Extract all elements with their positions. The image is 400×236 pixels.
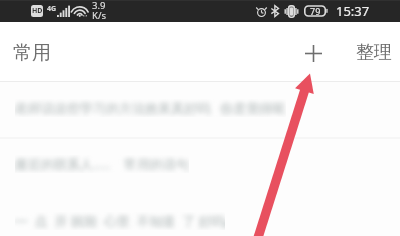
staticText: 整理 (356, 41, 392, 64)
staticText: 老师说这些学习的方法效果真好吗 你是觉得呢 (15, 99, 286, 117)
staticText: 15:37 (336, 2, 370, 20)
staticText: 一 点 开 就能 心里 不知道 了 好吗 (15, 212, 225, 230)
staticText: K/s (92, 9, 106, 22)
staticText: 最近的联系人..... 常用的语句 (15, 155, 189, 173)
button[interactable]: Add (291, 28, 335, 78)
staticText: 3.9 (92, 0, 106, 12)
button[interactable]: 整理 (348, 27, 400, 78)
staticText: HD (32, 6, 43, 16)
staticText: 4G (47, 4, 57, 14)
staticText: 常用 (13, 41, 51, 65)
staticText: 79 (310, 5, 321, 17)
